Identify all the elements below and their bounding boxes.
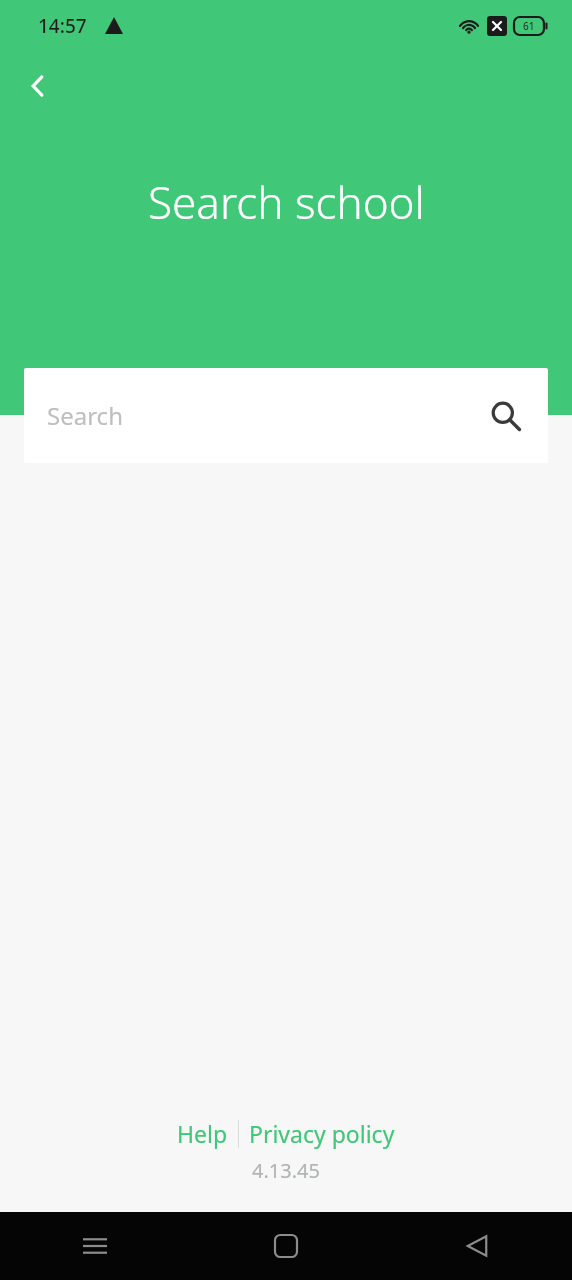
button[interactable]: Back [381,1212,572,1280]
button[interactable]: Search [24,368,548,463]
staticText: Privacy policy [249,1118,395,1149]
button[interactable]: Help [167,1114,238,1153]
button[interactable]: Search [484,394,528,438]
button[interactable]: Recents [0,1212,190,1280]
staticText: 4.13.45 [252,1157,320,1184]
staticText: Search [47,399,123,432]
staticText: 14:57 [38,13,87,39]
staticText: 61 [523,19,535,33]
staticText: Help [177,1118,228,1149]
button[interactable]: Home [190,1212,381,1280]
button[interactable]: Back [14,62,62,110]
staticText: Search school [148,172,425,232]
button[interactable]: Privacy policy [239,1114,405,1153]
